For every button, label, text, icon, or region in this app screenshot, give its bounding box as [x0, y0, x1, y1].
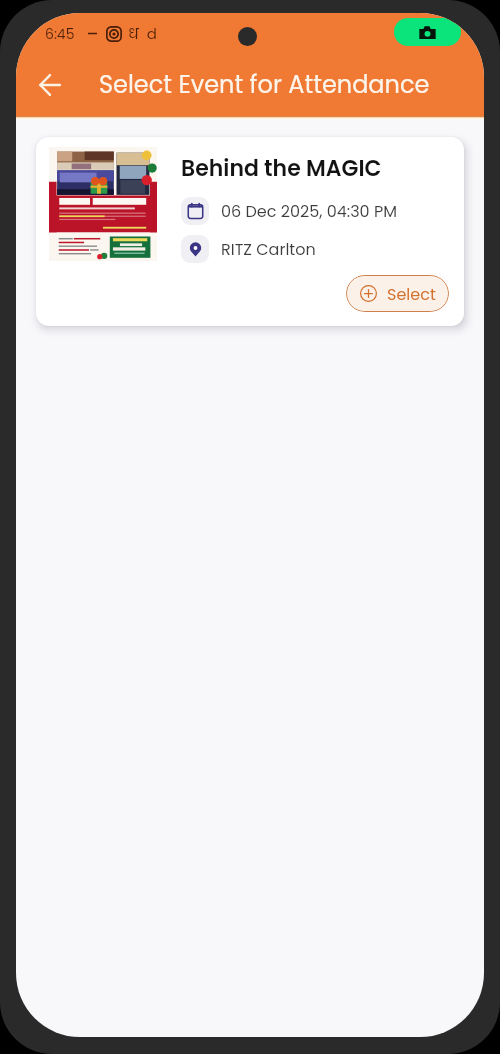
button[interactable]: Behind the MAGIC	[36, 137, 464, 326]
staticText: Select Event for Attendance	[99, 68, 430, 102]
staticText: ध d	[128, 23, 157, 44]
staticText: Behind the MAGIC	[181, 153, 382, 184]
other: Camera in use	[394, 18, 461, 46]
button[interactable]: Back	[28, 63, 72, 107]
staticText: Select	[387, 283, 436, 305]
staticText: RITZ Carlton	[221, 238, 316, 260]
staticText: 06 Dec 2025, 04:30 PM	[221, 200, 397, 222]
staticText: 6:45	[45, 24, 75, 44]
button[interactable]: Select	[346, 275, 449, 312]
